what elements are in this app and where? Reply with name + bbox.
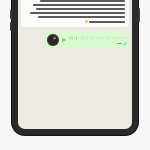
- other: Sender photo: [47, 34, 59, 46]
- other: Power: [138, 8, 140, 22]
- other: Volume down: [10, 22, 12, 31]
- button[interactable]: Sender photo: [45, 32, 129, 47]
- other: Volume up: [10, 10, 12, 19]
- button[interactable]: [21, 0, 129, 27]
- button[interactable]: Play voice message: [61, 37, 67, 43]
